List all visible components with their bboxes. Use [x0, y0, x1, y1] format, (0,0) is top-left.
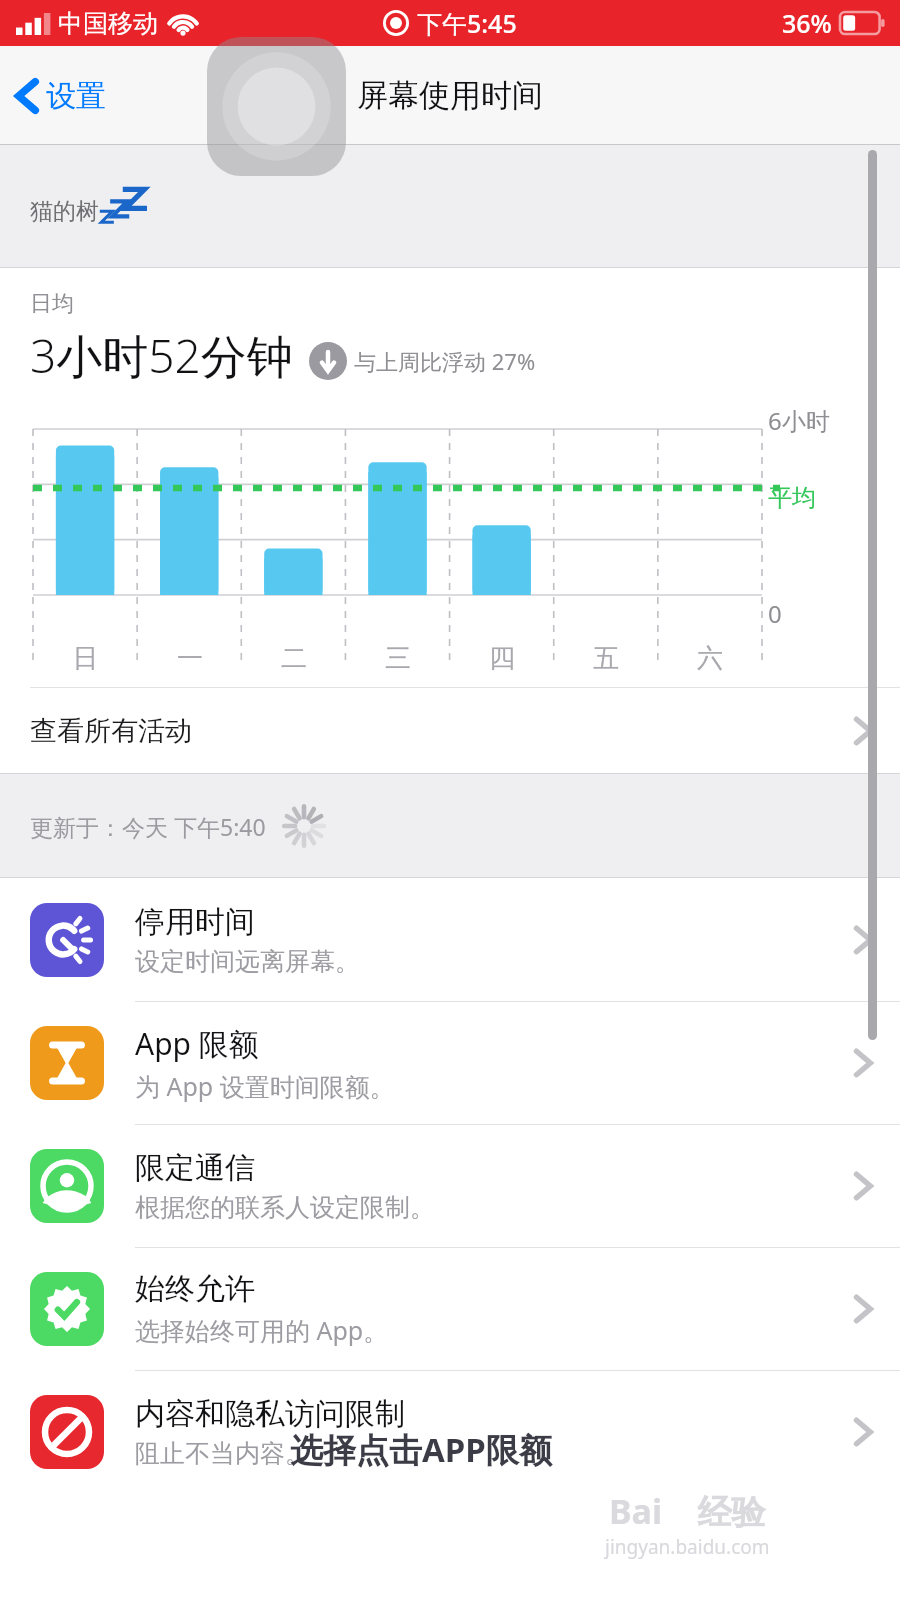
staticText: 为 App 设置时间限额。	[135, 1069, 395, 1103]
staticText: 更新于：今天 下午5:40	[30, 811, 266, 842]
button[interactable]: 设置	[0, 65, 124, 127]
staticText: 查看所有活动	[30, 714, 192, 748]
staticText: 下午5:45	[417, 6, 517, 40]
button[interactable]: 查看所有活动	[0, 688, 900, 773]
staticText: 平均	[768, 483, 816, 513]
staticText: 始终允许	[135, 1270, 255, 1308]
staticText: 36%	[782, 6, 832, 40]
staticText: 二	[242, 642, 346, 675]
staticText: 6小时	[768, 404, 830, 437]
staticText: 根据您的联系人设定限制。	[135, 1192, 435, 1223]
button[interactable]: 停用时间	[0, 878, 900, 1001]
staticText: 日均	[30, 290, 74, 318]
staticText: 内容和隐私访问限制	[135, 1395, 405, 1433]
staticText: jingyan.baidu.com	[605, 1534, 770, 1560]
staticText: 设定时间远离屏幕。	[135, 946, 360, 977]
staticText: 停用时间	[135, 903, 255, 941]
button[interactable]: 限定通信	[0, 1124, 900, 1247]
other: AssistiveTouch	[207, 37, 346, 176]
staticText: 一	[138, 642, 242, 675]
staticText: 0	[768, 597, 782, 630]
staticText: 五	[554, 642, 658, 675]
staticText: 阻止不当内容。	[135, 1438, 310, 1469]
staticText: 中国移动	[58, 8, 158, 39]
staticText: 猫的树	[30, 197, 99, 226]
staticText: 六	[658, 642, 762, 675]
staticText: Bai 经验	[609, 1488, 766, 1534]
staticText: 三	[346, 642, 450, 675]
staticText: 3小时52分钟	[30, 324, 293, 387]
staticText: 选择始终可用的 App。	[135, 1313, 389, 1347]
staticText: 四	[450, 642, 554, 675]
staticText: 与上周比浮动 27%	[354, 346, 536, 376]
staticText: 选择点击APP限额	[290, 1427, 552, 1472]
staticText: 设置	[46, 77, 106, 115]
staticText: 屏幕使用时间	[357, 76, 543, 115]
staticText: 限定通信	[135, 1149, 255, 1187]
button[interactable]: 始终允许	[0, 1247, 900, 1370]
staticText: App 限额	[135, 1023, 259, 1064]
staticText: 日	[33, 642, 138, 675]
button[interactable]: 内容和隐私访问限制	[0, 1370, 900, 1493]
button[interactable]: App 限额	[0, 1001, 900, 1124]
